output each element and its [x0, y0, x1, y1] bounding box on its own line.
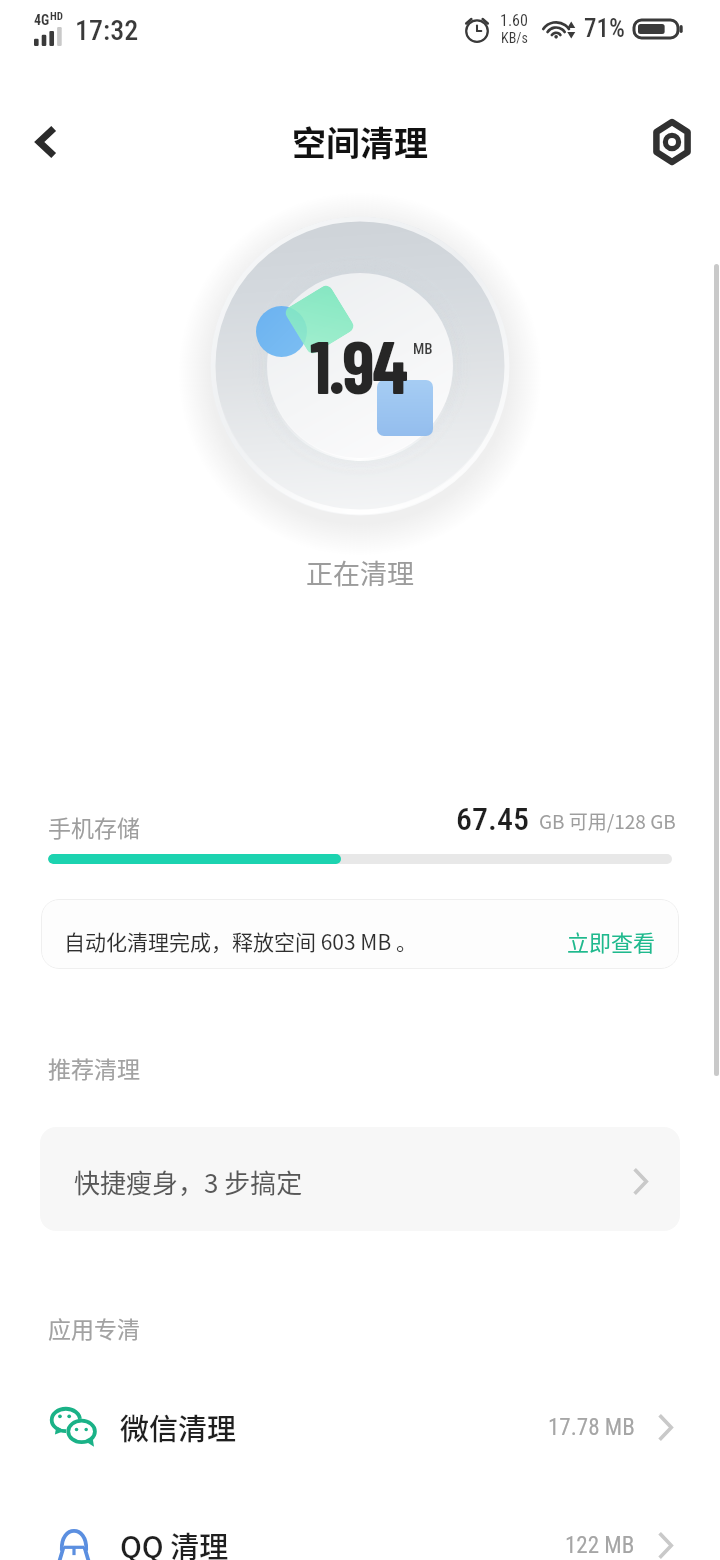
staticText: 1.94	[310, 320, 406, 409]
staticText: 应用专清	[48, 1311, 140, 1344]
staticText: 微信清理	[120, 1406, 237, 1448]
button[interactable]: 微信清理	[40, 1387, 680, 1467]
staticText: 71%	[584, 14, 625, 43]
staticText: 1.60	[500, 11, 528, 30]
staticText: 立即查看	[567, 925, 656, 957]
staticText: 122 MB	[565, 1532, 635, 1559]
button[interactable]: Settings	[644, 114, 700, 170]
staticText: 67.45	[456, 800, 529, 838]
staticText: HD	[50, 10, 63, 23]
staticText: 17:32	[75, 14, 139, 47]
staticText: MB	[413, 340, 433, 358]
staticText: GB 可用/128 GB	[539, 807, 676, 835]
button[interactable]: 快捷瘦身，3 步搞定	[40, 1127, 680, 1231]
staticText: 4G	[34, 12, 50, 28]
staticText: 快捷瘦身，3 步搞定	[74, 1163, 303, 1201]
button[interactable]: 自动化清理完成，释放空间 603 MB 。	[41, 899, 679, 969]
staticText: KB/s	[501, 30, 528, 46]
button[interactable]: Back	[16, 112, 76, 172]
staticText: 正在清理	[306, 553, 414, 592]
staticText: 空间清理	[292, 117, 428, 166]
staticText: 手机存储	[48, 810, 140, 843]
staticText: QQ 清理	[120, 1524, 229, 1560]
staticText: 17.78 MB	[548, 1414, 635, 1441]
staticText: 自动化清理完成，释放空间 603 MB 。	[64, 926, 417, 956]
staticText: 推荐清理	[48, 1051, 140, 1084]
button[interactable]: QQ 清理	[40, 1505, 680, 1560]
